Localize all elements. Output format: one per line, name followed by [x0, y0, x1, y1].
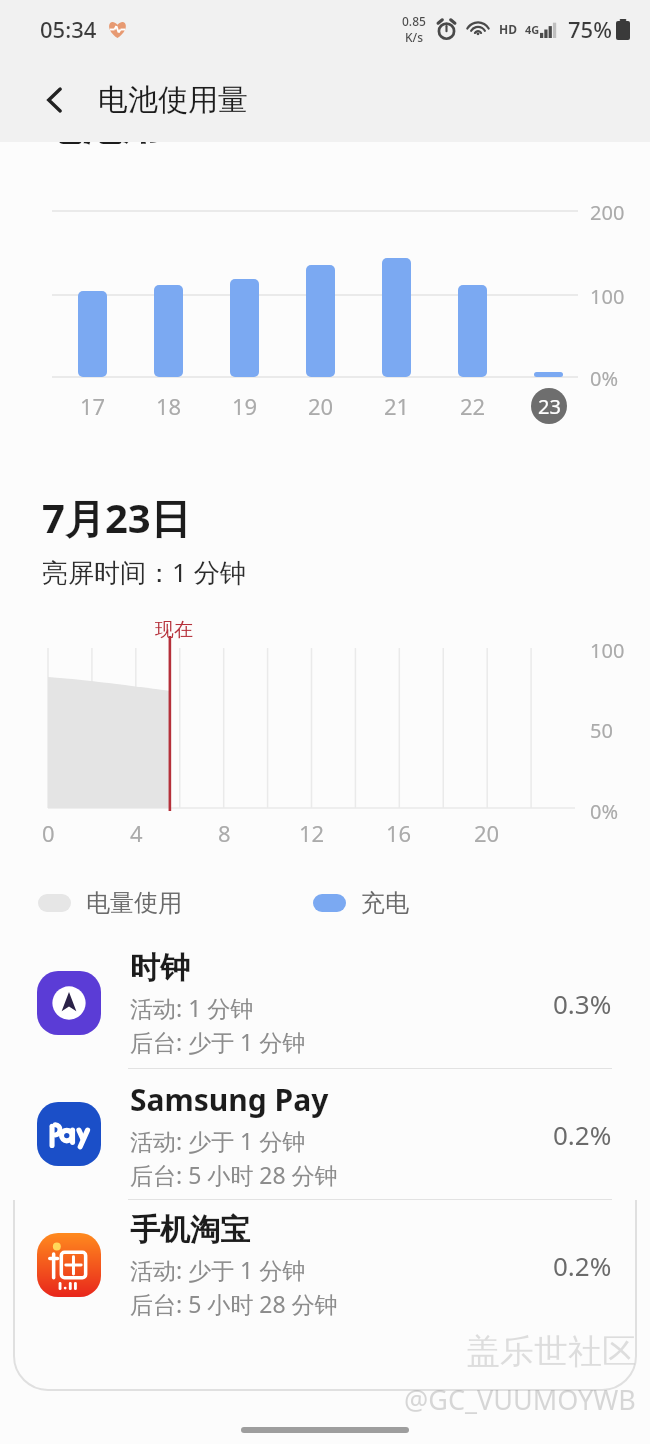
- staticText: 充电: [361, 888, 409, 918]
- staticText: 0%: [590, 365, 619, 392]
- staticText: 18: [156, 391, 182, 421]
- staticText: Samsung Pay: [130, 1079, 329, 1120]
- staticText: 后台: 5 小时 28 分钟: [130, 1159, 338, 1190]
- staticText: 活动: 1 分钟: [130, 992, 254, 1023]
- staticText: 0.3%: [553, 986, 612, 1021]
- staticText: 后台: 少于 1 分钟: [130, 1026, 306, 1057]
- staticText: 20: [308, 391, 334, 421]
- staticText: 0.2%: [553, 1117, 612, 1152]
- staticText: 现在: [155, 618, 193, 642]
- staticText: 50: [590, 717, 613, 744]
- staticText: 0: [42, 818, 55, 848]
- staticText: 盖乐世社区: [466, 1330, 636, 1373]
- staticText: 电池使用量: [98, 81, 248, 119]
- staticText: 后台: 5 小时 28 分钟: [130, 1288, 338, 1319]
- staticText: 4: [130, 818, 143, 848]
- staticText: 17: [80, 391, 106, 421]
- staticText: 0.85: [402, 13, 426, 29]
- staticText: 22: [460, 391, 486, 421]
- staticText: 电量使用: [86, 888, 182, 918]
- staticText: 100: [590, 283, 625, 310]
- staticText: 16: [386, 818, 412, 848]
- staticText: 200: [590, 199, 625, 226]
- staticText: 亮屏时间：1 分钟: [42, 554, 246, 590]
- staticText: 8: [218, 818, 231, 848]
- staticText: 75%: [568, 14, 612, 44]
- staticText: 12: [299, 818, 325, 848]
- button[interactable]: Back: [26, 71, 84, 129]
- staticText: HD: [499, 21, 517, 37]
- staticText: 4G: [525, 22, 540, 37]
- staticText: 0.2%: [553, 1248, 612, 1283]
- staticText: 20: [474, 818, 500, 848]
- button[interactable]: Samsung Pay: [0, 1069, 650, 1199]
- staticText: 0%: [590, 798, 619, 825]
- staticText: 手机淘宝: [130, 1211, 250, 1249]
- staticText: 7月23日: [42, 490, 191, 545]
- staticText: K/s: [405, 29, 424, 45]
- staticText: 21: [384, 391, 410, 421]
- staticText: 活动: 少于 1 分钟: [130, 1125, 306, 1156]
- staticText: @GC_VUUMOYWB: [404, 1381, 636, 1418]
- button[interactable]: 手机淘宝: [0, 1200, 650, 1330]
- staticText: 19: [232, 391, 258, 421]
- staticText: 05:34: [40, 14, 97, 44]
- staticText: 电池用量: [42, 100, 202, 150]
- staticText: 23: [538, 393, 561, 420]
- staticText: 时钟: [130, 949, 190, 987]
- button[interactable]: 23: [531, 388, 567, 424]
- button[interactable]: 时钟: [0, 938, 650, 1068]
- staticText: 活动: 少于 1 分钟: [130, 1254, 306, 1285]
- staticText: 100: [590, 637, 625, 664]
